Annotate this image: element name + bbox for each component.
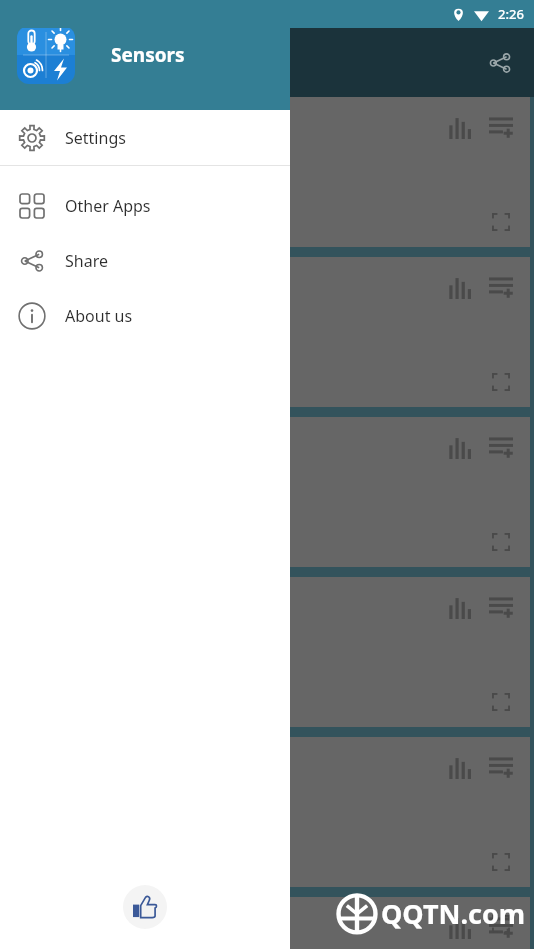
- button[interactable]: Chart: [2, 417, 530, 567]
- button[interactable]: Settings: [0, 110, 290, 165]
- button[interactable]: Other Apps: [0, 178, 290, 233]
- staticText: Share: [65, 250, 108, 272]
- staticText: QQTN.com: [381, 895, 526, 932]
- button[interactable]: Add to list: [484, 751, 518, 785]
- button[interactable]: Add to list: [484, 271, 518, 305]
- button[interactable]: Expand: [486, 367, 516, 397]
- button[interactable]: Sensors app icon: [17, 26, 75, 84]
- button[interactable]: About us: [0, 288, 290, 343]
- button[interactable]: Chart: [2, 97, 530, 247]
- button[interactable]: Expand: [486, 909, 516, 939]
- button[interactable]: Add to list: [484, 431, 518, 465]
- button[interactable]: Chart: [2, 737, 530, 887]
- button[interactable]: Chart: [442, 431, 476, 465]
- button[interactable]: Chart: [2, 257, 530, 407]
- button[interactable]: Chart: [2, 577, 530, 727]
- button[interactable]: Chart: [442, 111, 476, 145]
- button[interactable]: Expand: [486, 207, 516, 237]
- button[interactable]: Chart: [442, 271, 476, 305]
- button[interactable]: Share: [0, 233, 290, 288]
- button[interactable]: Add to list: [484, 591, 518, 625]
- staticText: Other Apps: [65, 195, 151, 217]
- button[interactable]: Expand: [486, 687, 516, 717]
- button[interactable]: Add to list: [484, 111, 518, 145]
- button[interactable]: Chart: [442, 911, 476, 945]
- staticText: Settings: [65, 127, 126, 149]
- staticText: Sensors: [111, 42, 185, 68]
- button[interactable]: Expand: [486, 847, 516, 877]
- button[interactable]: Share: [476, 39, 524, 87]
- button[interactable]: Expand: [486, 527, 516, 557]
- button[interactable]: Chart: [2, 897, 530, 949]
- staticText: 2:26: [498, 5, 524, 23]
- staticText: About us: [65, 305, 133, 327]
- button[interactable]: Like on Facebook: [123, 885, 167, 929]
- button[interactable]: Chart: [442, 591, 476, 625]
- button[interactable]: Add to list: [484, 911, 518, 945]
- button[interactable]: Chart: [442, 751, 476, 785]
